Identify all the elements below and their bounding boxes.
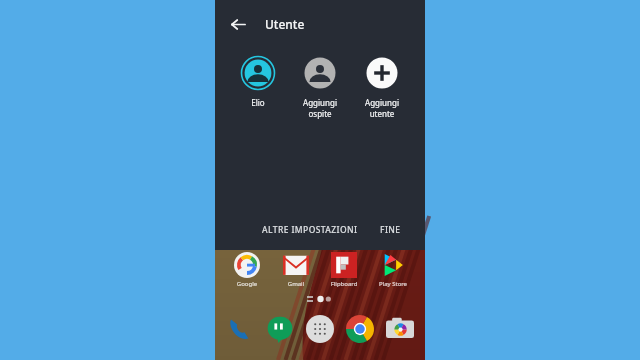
button[interactable]: Google — [225, 252, 269, 288]
button[interactable]: Aggiungi utente — [353, 54, 411, 121]
staticText: FINE — [380, 224, 401, 236]
staticText: Flipboard — [322, 280, 366, 288]
button[interactable]: FINE — [376, 218, 405, 242]
staticText: Aggiungi utente — [353, 97, 411, 119]
button[interactable]: Phone — [221, 310, 259, 348]
button[interactable]: Aggiungi ospite — [291, 54, 349, 121]
staticText: Aggiungi ospite — [291, 97, 349, 119]
button[interactable]: Gmail — [274, 252, 318, 288]
button[interactable]: Camera — [381, 310, 419, 348]
staticText: Gmail — [274, 280, 318, 288]
button[interactable]: Flipboard — [322, 252, 366, 288]
button[interactable]: ALTRE IMPOSTAZIONI — [258, 218, 362, 242]
button[interactable]: Elio — [229, 54, 287, 110]
button[interactable]: Play Store — [371, 252, 415, 288]
staticText: ALTRE IMPOSTAZIONI — [262, 224, 358, 236]
staticText: Elio — [229, 97, 287, 108]
staticText: Google — [225, 280, 269, 288]
staticText: Play Store — [371, 280, 415, 288]
button[interactable]: Back — [225, 11, 251, 37]
button[interactable]: Hangouts — [261, 310, 299, 348]
button[interactable]: Apps — [301, 310, 339, 348]
button[interactable]: Chrome — [341, 310, 379, 348]
staticText: Utente — [265, 16, 305, 32]
